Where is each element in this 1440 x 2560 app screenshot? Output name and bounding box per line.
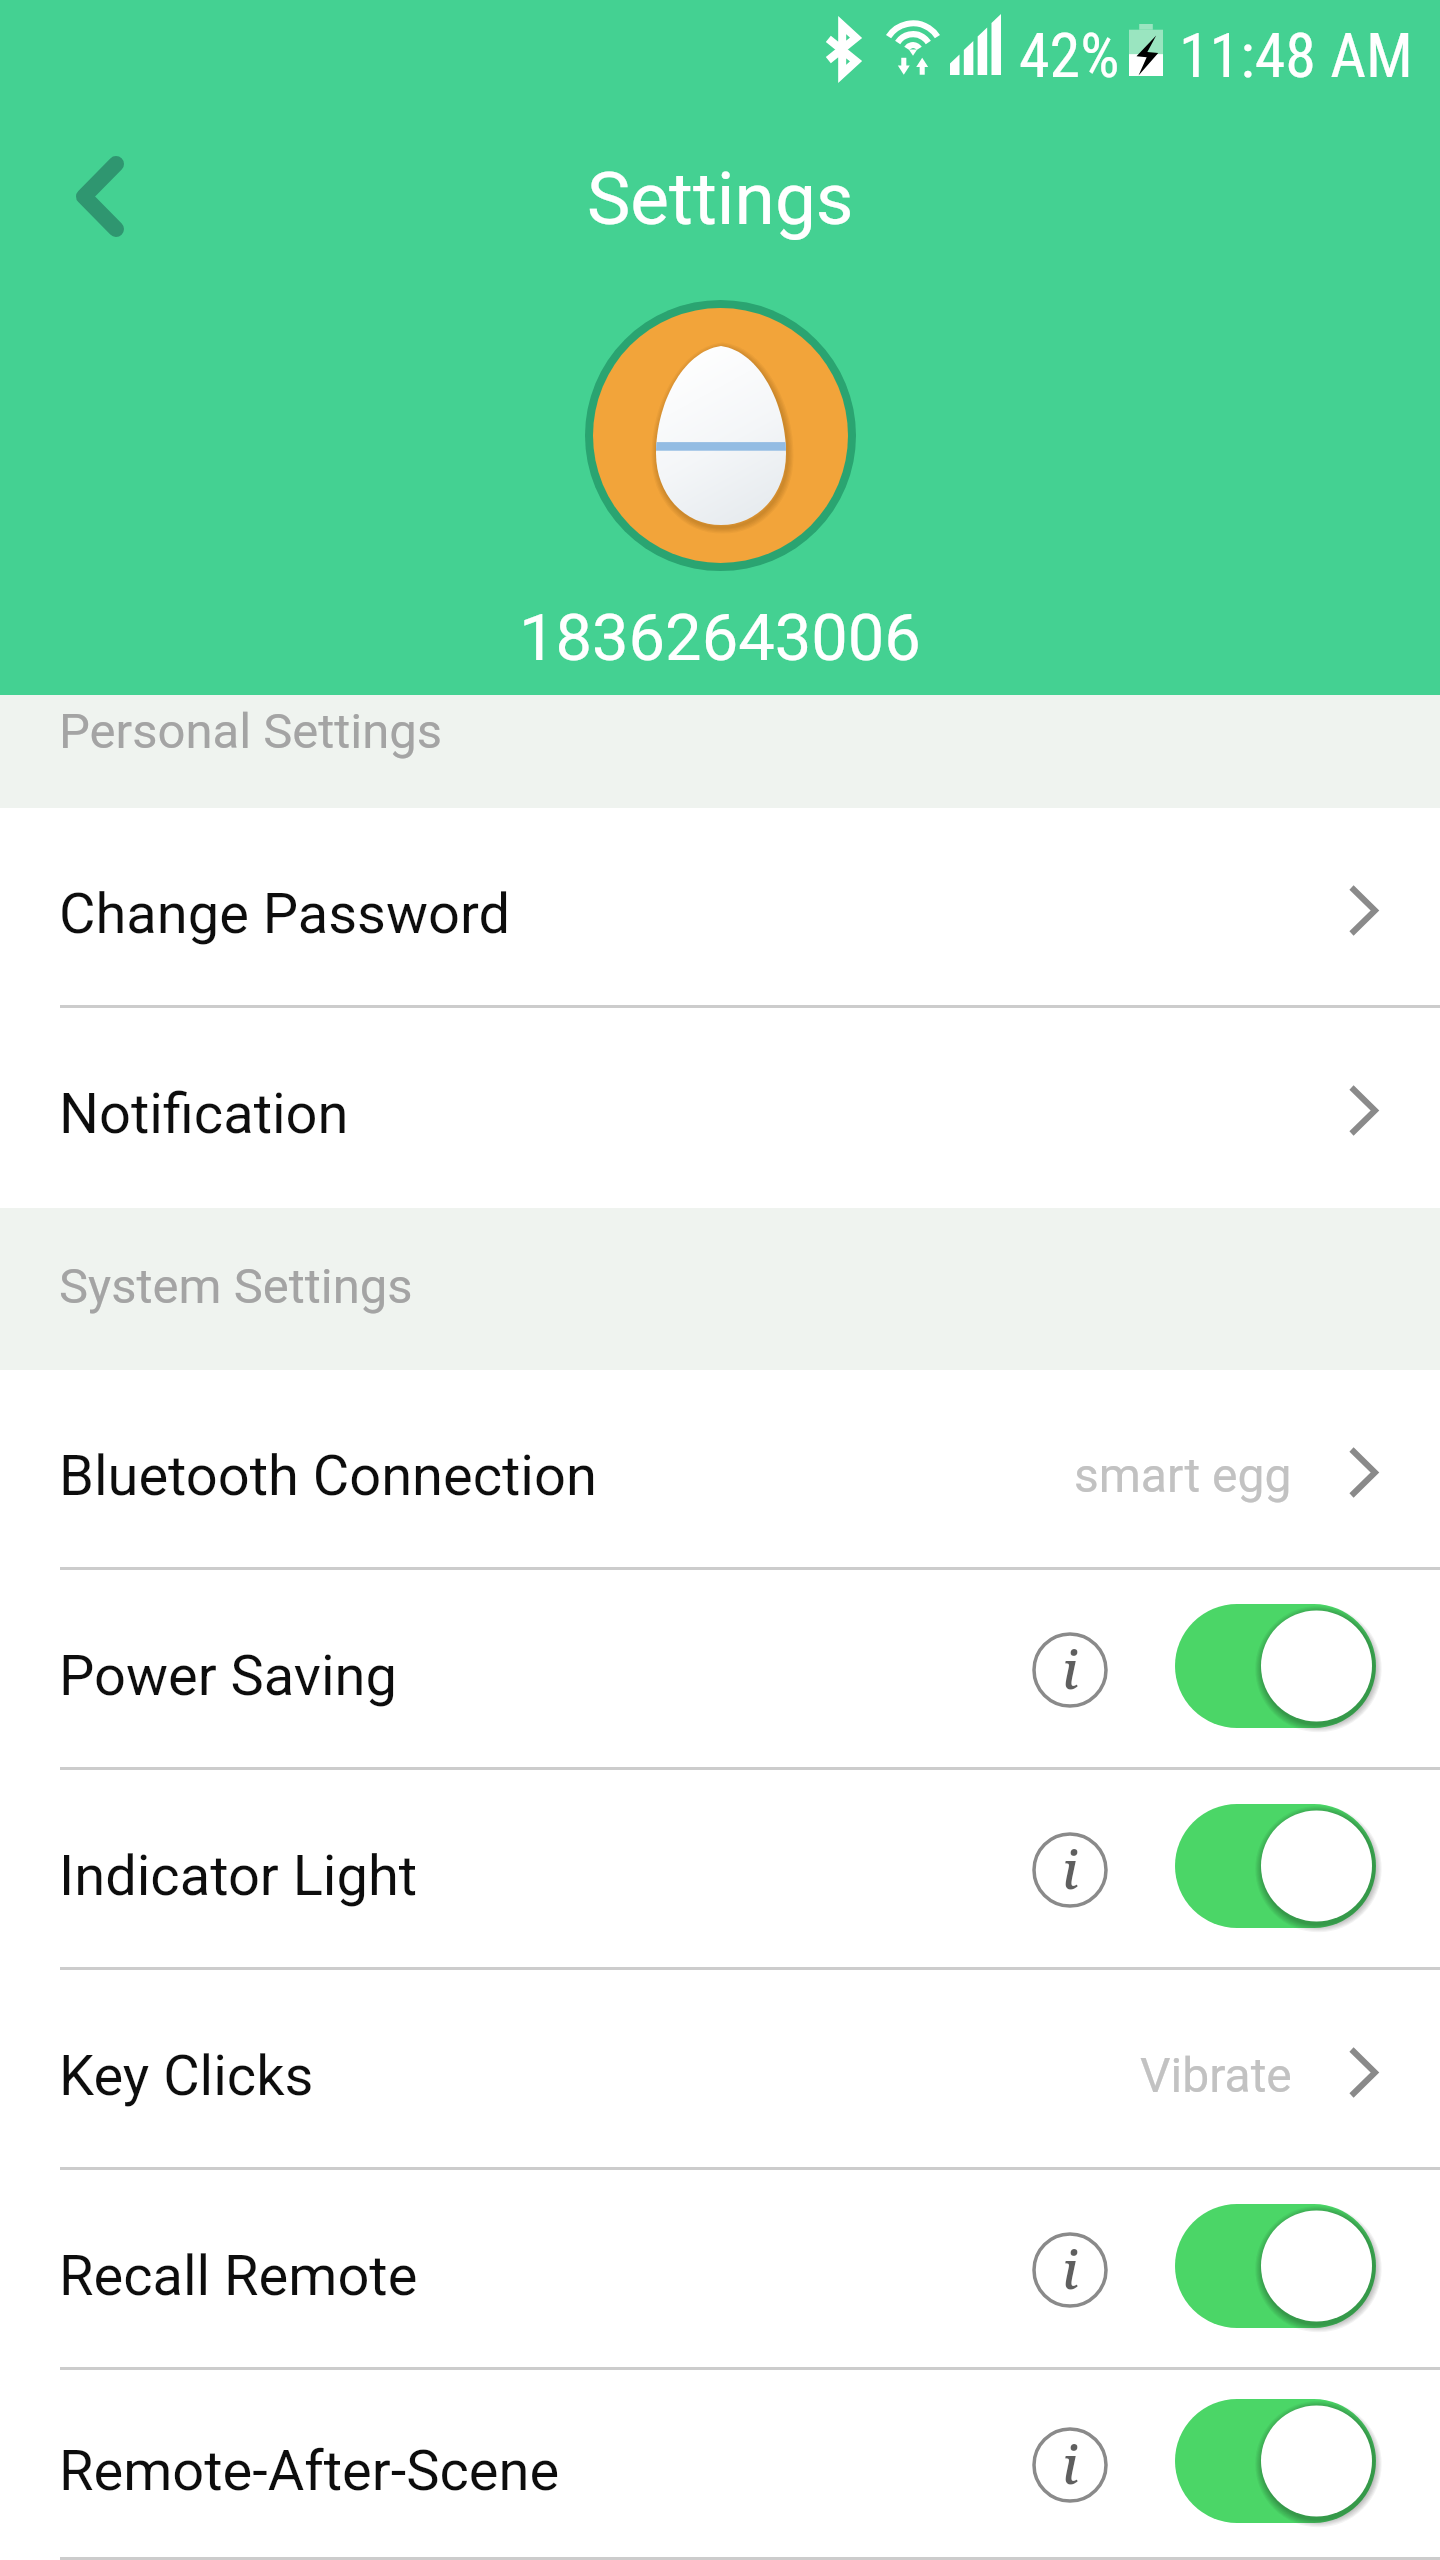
staticText: System Settings [59,1258,413,1315]
button[interactable]: About Recall Remote [1033,2233,1107,2307]
staticText: 11:48 AM [1179,19,1413,92]
button[interactable]: Indicator Light [0,1770,1440,1970]
button[interactable]: Remote-After-Scene on [1175,2397,1376,2533]
button[interactable]: Notification [0,1008,1440,1208]
button[interactable]: Remote-After-Scene [0,2370,1440,2560]
button[interactable]: About Remote-After-Scene [1033,2428,1107,2502]
staticText: Power Saving [59,1643,397,1709]
staticText: i [1062,2233,1079,2304]
staticText: i [1062,1833,1079,1904]
button[interactable]: Key Clicks [0,1970,1440,2170]
other: Open Bluetooth Connection [1348,1446,1379,1499]
staticText: Notification [59,1081,349,1147]
staticText: Bluetooth Connection [59,1443,597,1509]
staticText: 42% [1019,19,1120,92]
button[interactable]: About Indicator Light [1033,1833,1107,1907]
staticText: Personal Settings [59,703,443,760]
staticText: Vibrate [1140,2047,1292,2103]
button[interactable]: Recall Remote on [1175,2202,1376,2338]
button[interactable]: About Power Saving [1033,1633,1107,1707]
button[interactable]: Back [40,135,160,255]
other: Open Change Password [1348,884,1379,937]
staticText: Remote-After-Scene [59,2438,560,2504]
staticText: i [1062,1633,1079,1704]
button[interactable]: Bluetooth Connection [0,1370,1440,1570]
other: Open Key Clicks [1348,2046,1379,2099]
staticText: Settings [587,156,854,242]
staticText: 18362643006 [519,600,921,676]
button[interactable]: Power Saving [0,1570,1440,1770]
staticText: Indicator Light [59,1843,418,1909]
staticText: i [1062,2428,1079,2499]
staticText: Recall Remote [59,2243,418,2309]
staticText: smart egg [1074,1447,1292,1503]
button[interactable]: Power Saving on [1175,1602,1376,1738]
button[interactable]: Recall Remote [0,2170,1440,2370]
button[interactable]: Change Password [0,808,1440,1008]
staticText: Change Password [59,881,511,947]
staticText: Key Clicks [59,2043,314,2109]
other: Open Notification [1348,1084,1379,1137]
button[interactable]: Indicator Light on [1175,1802,1376,1938]
button[interactable]: Profile avatar [585,300,856,571]
